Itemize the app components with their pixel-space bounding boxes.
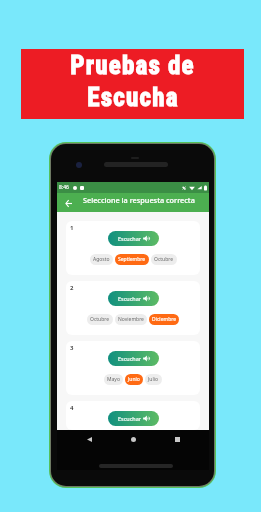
staticText: Junio: [128, 376, 140, 383]
staticText: Seleccione la respuesta correcta: [83, 195, 195, 205]
staticText: Septiembre: [118, 256, 146, 263]
staticText: Octubre: [90, 316, 110, 323]
staticText: 3: [70, 344, 74, 352]
button[interactable]: 1: [66, 221, 200, 275]
staticText: Diciembre: [152, 316, 176, 323]
button[interactable]: Mayo: [104, 374, 123, 385]
button[interactable]: Escuchar: [108, 351, 159, 366]
button[interactable]: Octubre: [151, 254, 177, 265]
staticText: 2: [70, 284, 74, 292]
button[interactable]: 3: [66, 341, 200, 395]
staticText: Escuchar: [118, 415, 142, 422]
staticText: Noviembre: [118, 316, 144, 323]
button[interactable]: 4: [66, 401, 200, 430]
staticText: Escuchar: [118, 355, 142, 362]
button[interactable]: Recents: [172, 434, 182, 444]
staticText: 4: [70, 404, 74, 412]
staticText: Escucha: [87, 83, 179, 112]
staticText: Mayo: [107, 376, 120, 383]
staticText: Escuchar: [118, 235, 142, 242]
staticText: Octubre: [154, 256, 174, 263]
button[interactable]: Diciembre: [149, 314, 179, 325]
staticText: Escuchar: [118, 295, 142, 302]
staticText: Julio: [148, 376, 159, 383]
staticText: Pruebas de: [70, 51, 195, 80]
button[interactable]: 2: [66, 281, 200, 335]
button[interactable]: Noviembre: [115, 314, 147, 325]
button[interactable]: Escuchar: [108, 411, 159, 426]
staticText: 8:46: [59, 184, 69, 191]
staticText: Agosto: [93, 256, 110, 263]
button[interactable]: Back: [62, 197, 74, 209]
button[interactable]: Home: [128, 434, 138, 444]
staticText: 1: [70, 224, 74, 232]
button[interactable]: Escuchar: [108, 291, 159, 306]
button[interactable]: Septiembre: [115, 254, 149, 265]
button[interactable]: Back: [84, 434, 94, 444]
button[interactable]: Octubre: [87, 314, 113, 325]
button[interactable]: Julio: [145, 374, 162, 385]
button[interactable]: Junio: [125, 374, 143, 385]
button[interactable]: Agosto: [90, 254, 113, 265]
button[interactable]: Escuchar: [108, 231, 159, 246]
